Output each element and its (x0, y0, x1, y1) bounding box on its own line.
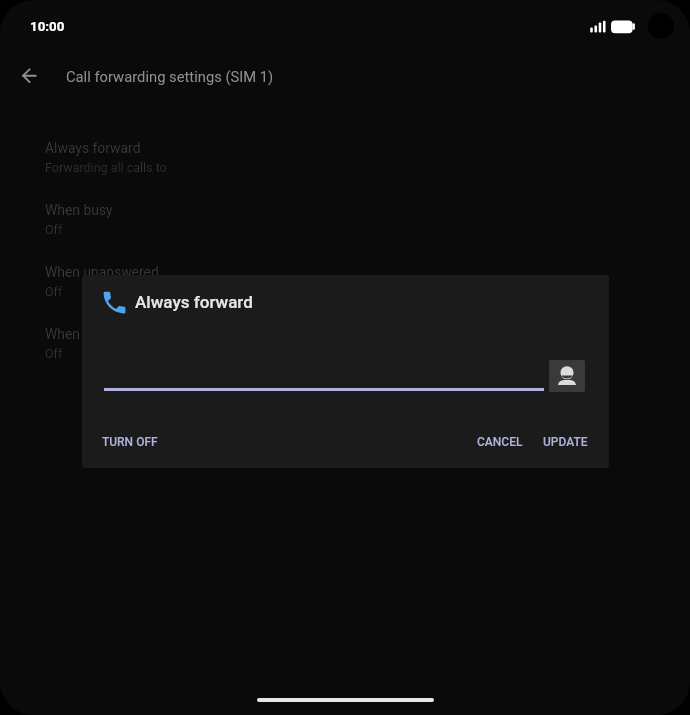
button[interactable]: TURN OFF (94, 427, 166, 457)
staticText: Off (45, 222, 63, 237)
staticText: When unreachable (45, 326, 160, 342)
staticText: 10:00 (30, 19, 65, 35)
staticText: TURN OFF (102, 435, 158, 449)
button[interactable]: Back (15, 61, 44, 90)
staticText: Off (45, 284, 63, 299)
button[interactable]: When unanswered (45, 264, 690, 326)
staticText: When unanswered (45, 264, 159, 280)
button[interactable]: When unreachable (45, 326, 690, 388)
staticText: Call forwarding settings (SIM 1) (66, 68, 274, 85)
staticText: UPDATE (543, 435, 588, 449)
staticText: When busy (45, 202, 113, 218)
button[interactable]: UPDATE (535, 427, 596, 457)
staticText: CANCEL (477, 435, 523, 449)
staticText: Always forward (135, 292, 253, 312)
staticText: Off (45, 346, 63, 361)
staticText: Always forward (45, 140, 141, 156)
button[interactable]: Choose contact (549, 360, 585, 392)
button[interactable]: Always forward (45, 140, 690, 202)
staticText: Forwarding all calls to (45, 160, 167, 175)
button[interactable]: CANCEL (469, 427, 531, 457)
